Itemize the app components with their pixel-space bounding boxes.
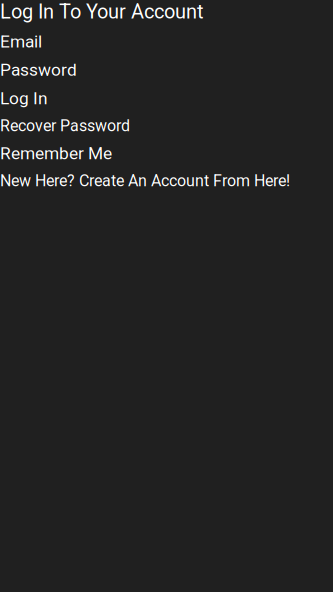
staticText: New Here? Create An Account From Here! bbox=[0, 171, 290, 190]
staticText: Log In bbox=[0, 88, 48, 108]
staticText: Log In To Your Account bbox=[0, 0, 204, 23]
staticText: Remember Me bbox=[0, 143, 112, 163]
staticText: Password bbox=[0, 60, 77, 80]
staticText: Email bbox=[0, 31, 42, 52]
staticText: Recover Password bbox=[0, 116, 130, 135]
